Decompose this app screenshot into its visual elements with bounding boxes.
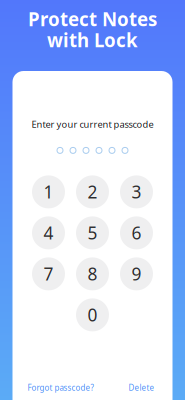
staticText: 2: [87, 180, 97, 203]
button[interactable]: 1: [32, 175, 65, 208]
staticText: 3: [131, 180, 141, 203]
button[interactable]: Delete: [128, 382, 154, 393]
staticText: 0: [87, 303, 97, 326]
staticText: 7: [43, 262, 53, 285]
button[interactable]: 4: [32, 216, 65, 249]
button[interactable]: 7: [32, 257, 65, 290]
staticText: 9: [131, 262, 141, 285]
staticText: Delete: [128, 382, 154, 393]
button[interactable]: 8: [76, 257, 109, 290]
staticText: Forgot passcode?: [27, 382, 93, 393]
staticText: Enter your current passcode: [31, 118, 153, 130]
button[interactable]: 5: [76, 216, 109, 249]
staticText: 1: [43, 180, 53, 203]
button[interactable]: 2: [76, 175, 109, 208]
staticText: 5: [87, 221, 97, 244]
staticText: 8: [87, 262, 97, 285]
button[interactable]: 0: [76, 298, 109, 331]
button[interactable]: 9: [120, 257, 153, 290]
staticText: Protect Notes: [28, 7, 157, 31]
button[interactable]: Forgot passcode?: [27, 382, 93, 393]
staticText: with Lock: [47, 28, 138, 52]
button[interactable]: 3: [120, 175, 153, 208]
staticText: 6: [131, 221, 141, 244]
button[interactable]: 6: [120, 216, 153, 249]
staticText: 4: [43, 221, 53, 244]
